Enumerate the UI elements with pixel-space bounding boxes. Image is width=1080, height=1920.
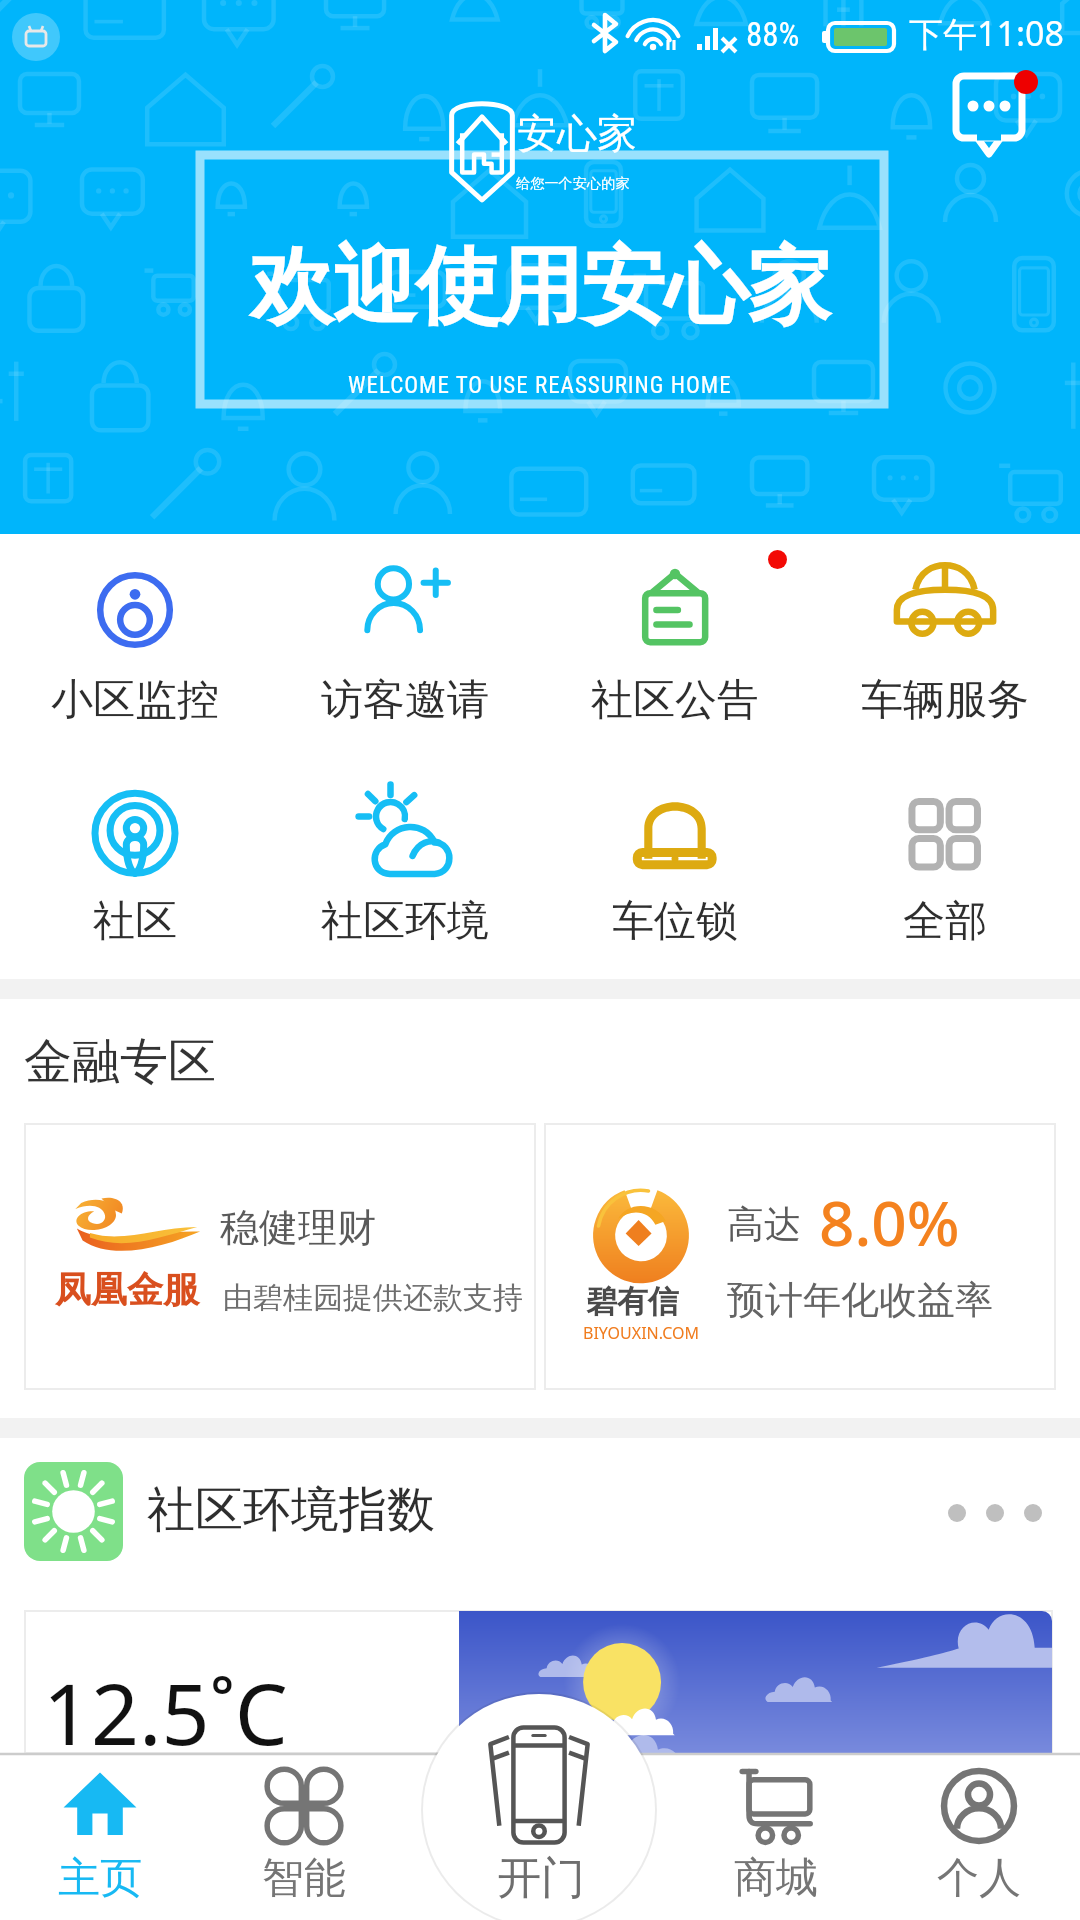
staticText: 稳健理财: [220, 1203, 376, 1252]
button[interactable]: 智能: [204, 1756, 404, 1920]
staticText: 车位锁: [612, 895, 738, 948]
button[interactable]: 主页: [0, 1756, 200, 1920]
staticText: 社区公告: [591, 674, 759, 727]
staticText: 开门: [497, 1851, 585, 1906]
button[interactable]: 社区公告: [540, 534, 810, 734]
staticText: 车辆服务: [861, 674, 1029, 727]
button[interactable]: 商城: [676, 1756, 876, 1920]
staticText: 8.0%: [819, 1180, 960, 1264]
staticText: 商城: [734, 1852, 818, 1905]
staticText: 全部: [903, 895, 987, 948]
staticText: 88%: [746, 15, 800, 54]
staticText: 主页: [58, 1852, 142, 1905]
staticText: 安心家: [517, 108, 637, 158]
button[interactable]: 小区监控: [0, 534, 270, 734]
staticText: 小区监控: [51, 674, 219, 727]
button[interactable]: 凤凰金服: [25, 1124, 535, 1389]
button[interactable]: 社区环境: [270, 755, 540, 955]
button[interactable]: 开门: [420, 1691, 658, 1920]
staticText: 12.5˚C: [43, 1655, 288, 1769]
staticText: 社区环境指数: [147, 1480, 435, 1540]
staticText: 访客邀请: [321, 674, 489, 727]
button[interactable]: 社区: [0, 755, 270, 955]
staticText: 预计年化收益率: [727, 1276, 993, 1324]
staticText: BIYOUXIN.COM: [583, 1322, 700, 1344]
staticText: 智能: [262, 1852, 346, 1905]
button[interactable]: More: [948, 1504, 1042, 1522]
button[interactable]: Messages: [940, 60, 1050, 170]
staticText: 高达: [727, 1201, 801, 1248]
staticText: 社区环境: [321, 895, 489, 948]
staticText: 社区: [93, 895, 177, 948]
staticText: 个人: [937, 1852, 1021, 1905]
staticText: 凤凰金服: [55, 1267, 199, 1312]
button[interactable]: 访客邀请: [270, 534, 540, 734]
button[interactable]: 车辆服务: [810, 534, 1080, 734]
button[interactable]: 全部: [810, 755, 1080, 955]
staticText: 碧有信: [586, 1282, 679, 1321]
button[interactable]: 个人: [879, 1756, 1079, 1920]
button[interactable]: 碧有信: [545, 1124, 1055, 1389]
staticText: 给您一个安心的家: [516, 175, 630, 193]
staticText: WELCOME TO USE REASSURING HOME: [348, 372, 732, 399]
staticText: 由碧桂园提供还款支持: [223, 1279, 523, 1317]
button[interactable]: 车位锁: [540, 755, 810, 955]
staticText: 金融专区: [24, 1032, 216, 1092]
staticText: 欢迎使用安心家: [250, 234, 831, 340]
staticText: 下午11:08: [909, 10, 1064, 56]
